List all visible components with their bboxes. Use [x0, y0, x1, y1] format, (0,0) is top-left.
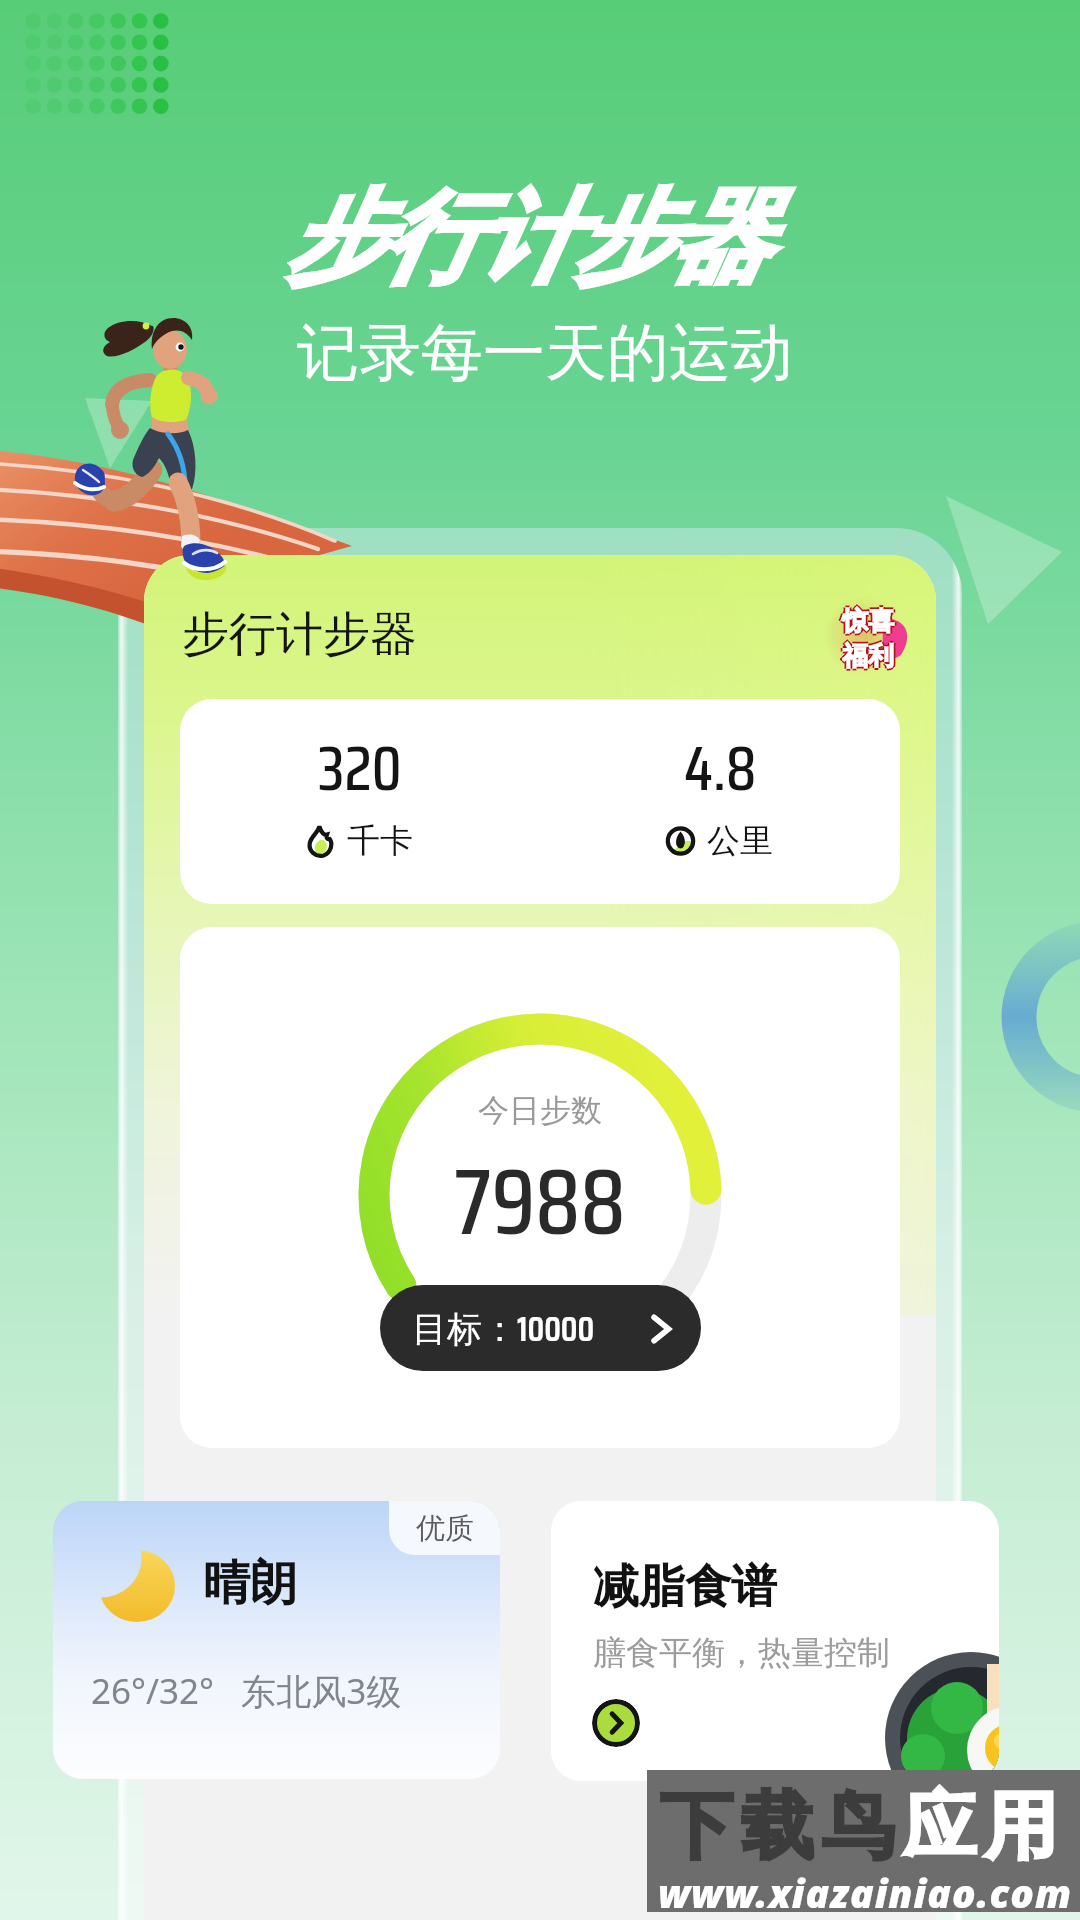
staticText: 26°/32° 东北风3级 [91, 1667, 402, 1715]
staticText: 惊喜 [840, 605, 892, 638]
staticText: 应用 [899, 1781, 1061, 1873]
staticText: 减脂食谱 [593, 1558, 777, 1616]
staticText: 福利 [842, 638, 894, 669]
button[interactable]: 查看减脂食谱 [592, 1699, 640, 1747]
staticText: 目标： [412, 1307, 517, 1351]
staticText: 福利 [840, 640, 892, 671]
button[interactable]: 320 [180, 699, 900, 904]
button[interactable]: 减脂食谱 [551, 1501, 999, 1781]
staticText: 膳食平衡，热量控制 [593, 1632, 890, 1674]
staticText: 优质 [416, 1510, 474, 1547]
staticText: 记录每一天的运动 [297, 314, 793, 392]
staticText: www.xiazainiao.com [658, 1866, 1073, 1919]
staticText: 今日步数 [478, 1091, 602, 1130]
staticText: 千卡 [347, 820, 413, 862]
staticText: 步行计步器 [287, 176, 767, 302]
staticText: 福利 [842, 640, 894, 671]
button[interactable]: 目标： [380, 1285, 701, 1371]
staticText: 福利 [844, 640, 896, 671]
staticText: 惊喜 [842, 607, 894, 640]
button[interactable]: 优质 [53, 1501, 500, 1779]
staticText: 步行计步器 [182, 605, 417, 664]
staticText: 惊喜 [844, 605, 896, 638]
staticText: 320 [318, 720, 402, 818]
button[interactable]: 惊喜福利 [840, 601, 920, 667]
staticText: 惊喜 [842, 605, 894, 638]
staticText: 7988 [454, 1130, 626, 1275]
staticText: 惊喜 [842, 603, 894, 636]
staticText: 10000 [517, 1301, 595, 1356]
staticText: 公里 [707, 820, 773, 862]
staticText: 下载鸟 [656, 1781, 899, 1873]
staticText: 4.8 [684, 720, 757, 818]
staticText: 晴朗 [203, 1554, 297, 1613]
staticText: 福利 [842, 642, 894, 673]
